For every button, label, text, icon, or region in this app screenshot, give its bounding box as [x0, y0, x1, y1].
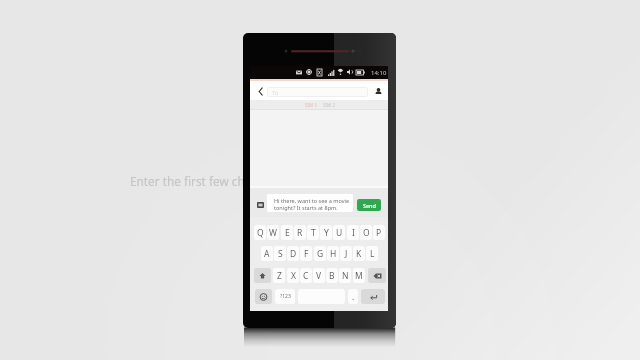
button[interactable]: L — [366, 246, 378, 261]
button[interactable]: F — [300, 246, 312, 261]
button[interactable]: N — [339, 268, 351, 283]
staticText: Enter the first few characters — [130, 173, 290, 189]
staticText: . — [352, 291, 355, 303]
button[interactable]: P — [373, 225, 385, 240]
button[interactable]: Attach — [257, 202, 264, 208]
staticText: H — [330, 248, 337, 260]
staticText: J — [345, 248, 348, 260]
staticText: F — [304, 248, 309, 260]
button[interactable]: J — [340, 246, 352, 261]
button[interactable]: To — [267, 87, 368, 97]
button[interactable]: backspace — [368, 268, 386, 283]
button[interactable]: C — [300, 268, 312, 283]
button[interactable]: M — [353, 268, 365, 283]
button[interactable]: enter — [361, 289, 385, 304]
staticText: B — [329, 270, 335, 282]
button[interactable]: SIM 1 — [301, 100, 321, 110]
staticText: O — [363, 227, 370, 239]
button[interactable]: G — [314, 246, 326, 261]
button[interactable]: O — [360, 225, 372, 240]
staticText: P — [376, 227, 382, 239]
staticText: A — [264, 248, 270, 260]
staticText: N — [342, 270, 349, 282]
staticText: Send — [363, 202, 376, 209]
button[interactable]: D — [287, 246, 299, 261]
staticText: E — [285, 227, 290, 239]
button[interactable]: R — [294, 225, 306, 240]
button[interactable]: I — [347, 225, 359, 240]
button[interactable]: U — [333, 225, 345, 240]
button[interactable]: B — [326, 268, 338, 283]
staticText: ?123 — [280, 293, 291, 300]
staticText: M — [355, 270, 363, 282]
button[interactable]: ?123 — [275, 289, 295, 304]
staticText: V — [316, 270, 322, 282]
staticText: Q — [257, 227, 264, 239]
button[interactable]: E — [281, 225, 293, 240]
staticText: To — [272, 89, 279, 96]
button[interactable]: V — [313, 268, 325, 283]
staticText: D — [290, 248, 297, 260]
staticText: L — [370, 248, 375, 260]
button[interactable]: emoji — [255, 289, 272, 304]
staticText: W — [269, 227, 277, 239]
button[interactable]: . — [348, 289, 358, 304]
staticText: C — [303, 270, 309, 282]
button[interactable]: shift — [254, 268, 271, 283]
staticText: S — [278, 248, 283, 260]
button[interactable]: Contacts — [371, 85, 385, 97]
button[interactable]: Q — [254, 225, 266, 240]
staticText: 14:10 — [371, 69, 387, 77]
staticText: T — [311, 227, 316, 239]
button[interactable]: S — [274, 246, 286, 261]
staticText: SIM 2 — [323, 102, 336, 108]
button[interactable]: A — [261, 246, 273, 261]
button[interactable]: Y — [320, 225, 332, 240]
staticText: Z — [277, 270, 282, 282]
button[interactable]: Back — [255, 85, 266, 98]
staticText: U — [336, 227, 343, 239]
staticText: G — [317, 248, 324, 260]
staticText: R — [297, 227, 303, 239]
button[interactable]: K — [353, 246, 365, 261]
button[interactable]: Send — [357, 199, 381, 211]
staticText: I — [352, 227, 355, 239]
staticText: K — [356, 248, 362, 260]
button[interactable]: Z — [273, 268, 285, 283]
staticText: X — [291, 270, 296, 282]
button[interactable]: Hi there, want to see a movie tonight? I… — [267, 194, 353, 212]
staticText: SIM 1 — [305, 102, 318, 108]
button[interactable]: W — [267, 225, 279, 240]
button[interactable]: X — [287, 268, 299, 283]
button[interactable]: SIM 2 — [320, 100, 338, 110]
button[interactable]: H — [327, 246, 339, 261]
staticText: Hi there, want to see a movie tonight? I… — [274, 197, 350, 211]
staticText: Y — [324, 227, 329, 239]
button[interactable]: T — [307, 225, 319, 240]
